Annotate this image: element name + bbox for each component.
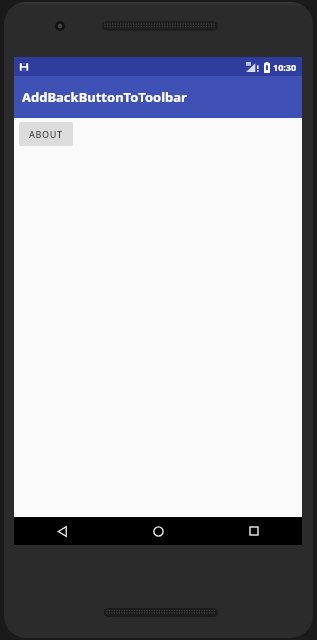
staticText: 10:30 — [273, 61, 297, 73]
button[interactable]: Back — [14, 517, 110, 545]
staticText: AddBackButtonToToolbar — [22, 88, 187, 106]
button[interactable]: ABOUT — [19, 122, 73, 146]
staticText: ABOUT — [29, 128, 63, 140]
button[interactable]: Home — [110, 517, 206, 545]
button[interactable]: Recent apps — [206, 517, 302, 545]
